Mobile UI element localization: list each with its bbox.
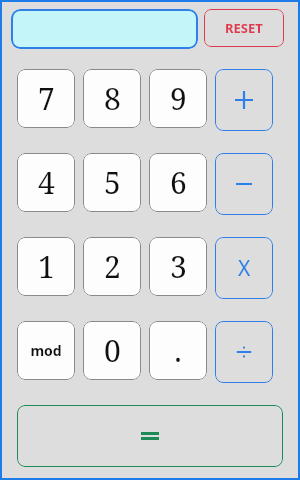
button[interactable]: Multiply [215,237,273,299]
button[interactable]: 2 [83,237,141,296]
staticText: 5 [104,162,121,203]
staticText: 9 [170,78,187,119]
staticText: . [174,330,182,371]
button[interactable]: 1 [17,237,75,296]
button[interactable]: 7 [17,69,75,128]
staticText: 8 [104,78,121,119]
staticText: 2 [104,246,121,287]
button[interactable]: 8 [83,69,141,128]
staticText: 6 [170,162,187,203]
staticText: 1 [38,246,55,287]
staticText: 4 [38,162,55,203]
staticText: X [238,254,251,283]
button[interactable]: . [149,321,207,380]
button[interactable]: 6 [149,153,207,212]
button[interactable]: Add [215,69,273,131]
button[interactable]: 5 [83,153,141,212]
staticText: 0 [104,330,121,371]
staticText: RESET [225,19,263,37]
button[interactable]: RESET [204,9,284,47]
staticText: 3 [170,246,187,287]
button[interactable]: mod [17,321,75,380]
button[interactable]: 9 [149,69,207,128]
button[interactable]: 3 [149,237,207,296]
button[interactable]: Divide [215,321,273,383]
staticText: mod [30,341,62,360]
button[interactable]: Display [11,9,198,49]
button[interactable]: Equals [17,405,283,467]
button[interactable]: 4 [17,153,75,212]
button[interactable]: 0 [83,321,141,380]
staticText: 7 [38,78,55,119]
button[interactable]: Subtract [215,153,273,215]
